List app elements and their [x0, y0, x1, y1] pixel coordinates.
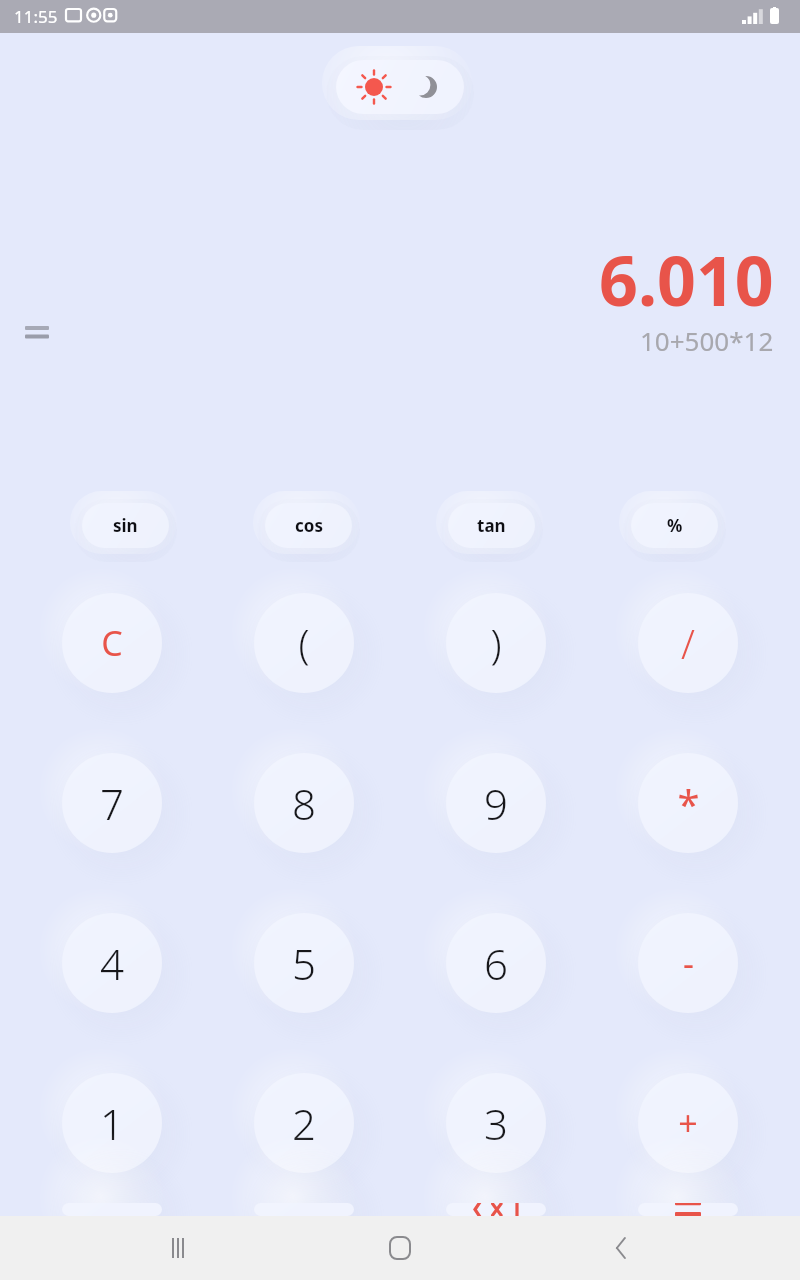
button[interactable]: 1 — [62, 1073, 162, 1173]
button[interactable]: Backspace — [446, 1203, 546, 1216]
button[interactable]: 7 — [62, 753, 162, 853]
button[interactable]: Recents — [150, 1220, 206, 1276]
button[interactable]: Home — [372, 1220, 428, 1276]
staticText: C — [101, 620, 123, 666]
staticText: 3 — [484, 1095, 508, 1152]
staticText: cos — [295, 514, 323, 537]
button[interactable]: Toggle theme — [336, 60, 464, 114]
button[interactable]: 6 — [446, 913, 546, 1013]
staticText: ) — [490, 616, 502, 670]
button[interactable]: 5 — [254, 913, 354, 1013]
button[interactable]: % — [631, 503, 718, 548]
staticText: 1 — [100, 1095, 124, 1152]
staticText: 5 — [292, 935, 316, 992]
staticText: 2 — [292, 1095, 316, 1152]
button[interactable]: / — [638, 593, 738, 693]
staticText: 4 — [100, 935, 124, 992]
staticText: sin — [113, 514, 138, 537]
button[interactable]: ) — [446, 593, 546, 693]
staticText: % — [667, 514, 683, 537]
staticText: + — [678, 1100, 698, 1146]
staticText: tan — [477, 514, 506, 537]
button[interactable]: tan — [448, 503, 535, 548]
staticText: 8 — [292, 775, 316, 832]
button[interactable]: 4 — [62, 913, 162, 1013]
button[interactable]: 3 — [446, 1073, 546, 1173]
staticText: - — [683, 940, 694, 986]
staticText: / — [681, 616, 695, 670]
button[interactable]: 8 — [254, 753, 354, 853]
button[interactable]: sin — [82, 503, 169, 548]
button[interactable]: 9 — [446, 753, 546, 853]
button[interactable]: + — [638, 1073, 738, 1173]
staticText: 11:55 — [14, 5, 58, 28]
staticText: * — [677, 776, 700, 830]
staticText: 6.010 — [599, 233, 774, 326]
button[interactable]: 2 — [254, 1073, 354, 1173]
button[interactable]: - — [638, 913, 738, 1013]
staticText: 9 — [484, 775, 508, 832]
button[interactable]: Equals — [638, 1203, 738, 1216]
button[interactable]: C — [62, 593, 162, 693]
staticText: ( — [298, 616, 310, 670]
staticText: 6 — [484, 935, 508, 992]
staticText: 10+500*12 — [640, 323, 774, 358]
button[interactable]: ( — [254, 593, 354, 693]
button[interactable]: cos — [265, 503, 352, 548]
button[interactable]: Back — [594, 1220, 650, 1276]
staticText: 7 — [100, 775, 124, 832]
button[interactable]: * — [638, 753, 738, 853]
